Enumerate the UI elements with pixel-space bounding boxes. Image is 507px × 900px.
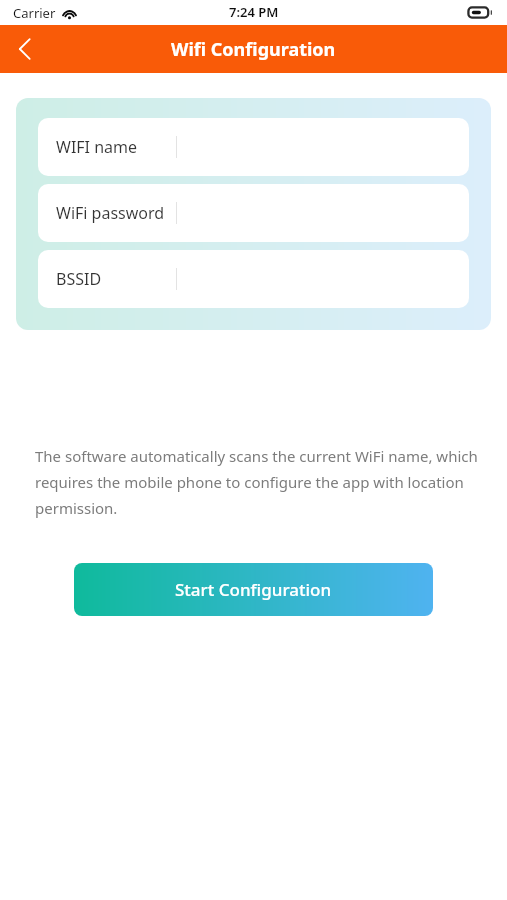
button[interactable]: Back — [0, 25, 48, 73]
staticText: Start Configuration — [175, 578, 332, 601]
staticText: WIFI name — [56, 136, 138, 158]
staticText: Wifi Configuration — [171, 37, 336, 62]
button[interactable]: WIFI name — [38, 118, 469, 176]
staticText: Carrier — [13, 4, 56, 22]
staticText: BSSID — [56, 268, 102, 290]
button[interactable]: Start Configuration — [74, 563, 433, 616]
staticText: WiFi password — [56, 202, 165, 224]
button[interactable]: BSSID — [38, 250, 469, 308]
button[interactable]: WiFi password — [38, 184, 469, 242]
staticText: The software automatically scans the cur… — [35, 446, 481, 519]
staticText: 7:24 PM — [229, 3, 279, 21]
